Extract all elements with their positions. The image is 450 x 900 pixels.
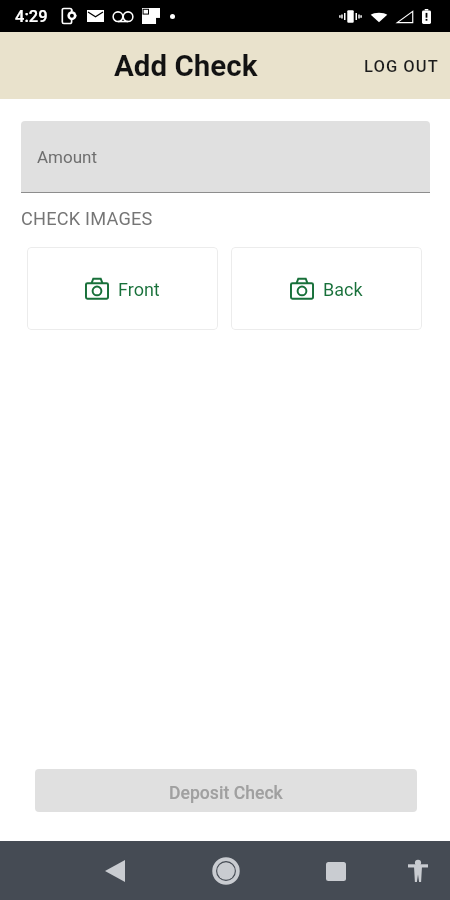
button[interactable]: Deposit Check [35, 769, 417, 812]
staticText: 4:29 [15, 7, 48, 26]
button[interactable]: Recent apps [308, 843, 364, 899]
staticText: Amount [37, 147, 98, 167]
button[interactable]: Front [27, 247, 218, 330]
button[interactable]: Home [198, 843, 254, 899]
staticText: Deposit Check [169, 783, 283, 804]
staticText: LOG OUT [364, 57, 439, 76]
staticText: Front [118, 279, 160, 300]
button[interactable]: Amount [21, 121, 430, 192]
button[interactable]: Accessibility [392, 845, 444, 897]
button[interactable]: Back [231, 247, 422, 330]
staticText: Add Check [114, 49, 258, 84]
staticText: CHECK IMAGES [21, 208, 153, 229]
button[interactable]: LOG OUT [350, 32, 450, 99]
button[interactable]: Back [87, 843, 143, 899]
staticText: Back [323, 279, 363, 300]
